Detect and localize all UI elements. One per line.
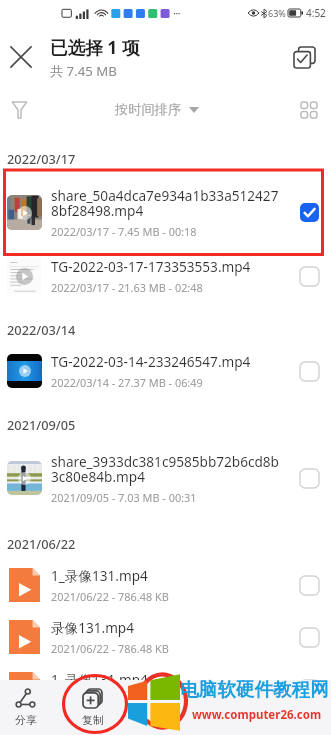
staticText: 2021/06/22 - 786.48 KB xyxy=(51,589,169,604)
button[interactable]: 录像131.mp4 xyxy=(0,611,331,663)
button[interactable]: share_3933dc381c9585bb72b6cd8b 3c80e84b.… xyxy=(0,440,331,516)
staticText: 共 7.45 MB xyxy=(50,62,117,80)
staticText: 2022/03/17 - 21.63 MB - 02:48 xyxy=(51,280,203,295)
staticText: share_50a4dca7e934a1b33a512427 8bf28498.… xyxy=(51,186,279,220)
button[interactable]: TG-2022-03-17-173353553.mp4 xyxy=(0,250,331,302)
staticText: 2022/03/17 xyxy=(7,150,76,167)
staticText: 2021/06/22 - 786.48 KB xyxy=(51,641,169,656)
button[interactable]: 复制 xyxy=(67,680,118,735)
staticText: 2021/06/22 - 786.48 KB xyxy=(51,693,169,708)
staticText: www.computer26.com xyxy=(192,707,331,723)
staticText: 2021/09/05 - 7.03 MB - 00:31 xyxy=(51,490,197,505)
button[interactable]: Select item xyxy=(295,262,323,290)
button[interactable]: Close xyxy=(1,37,41,77)
button[interactable]: 1_录像131.mp4 xyxy=(0,663,331,715)
staticText: 电脑软硬件教程网 xyxy=(180,678,330,701)
staticText: 63% xyxy=(268,7,286,19)
button[interactable]: Select item xyxy=(295,571,323,599)
button[interactable]: share_50a4dca7e934a1b33a512427 8bf28498.… xyxy=(0,174,331,250)
button[interactable]: 1_录像131.mp4 xyxy=(0,559,331,611)
staticText: 2022/03/17 - 7.45 MB - 00:18 xyxy=(51,224,197,239)
staticText: 已选择 1 项 xyxy=(50,35,140,59)
staticText: 2021/09/05 xyxy=(7,416,76,433)
staticText: 4:52 xyxy=(306,6,326,20)
staticText: TG-2022-03-17-173353553.mp4 xyxy=(51,257,251,276)
staticText: share_3933dc381c9585bb72b6cd8b 3c80e84b.… xyxy=(51,452,279,486)
staticText: 2021/06/22 xyxy=(7,535,76,552)
button[interactable]: 分享 xyxy=(0,680,51,735)
staticText: 分享 xyxy=(15,713,37,727)
button[interactable]: 按时间排序 xyxy=(109,95,205,124)
button[interactable]: Filter xyxy=(1,92,37,128)
staticText: 1_录像131.mp4 xyxy=(51,670,148,689)
button[interactable]: Select item xyxy=(295,623,323,651)
staticText: 2022/03/14 - 27.37 MB - 06:49 xyxy=(51,375,203,390)
button[interactable]: Select item xyxy=(295,675,323,703)
staticText: 1_录像131.mp4 xyxy=(51,566,148,585)
staticText: 录像131.mp4 xyxy=(51,618,135,637)
button[interactable]: Grid view xyxy=(291,92,327,128)
staticText: 按时间排序 xyxy=(115,101,181,118)
button[interactable]: TG-2022-03-14-233246547.mp4 xyxy=(0,345,331,397)
staticText: TG-2022-03-14-233246547.mp4 xyxy=(51,352,251,371)
button[interactable]: Select item xyxy=(295,464,323,492)
staticText: 复制 xyxy=(82,713,104,727)
button[interactable]: Select item xyxy=(295,198,323,226)
staticText: 2022/03/14 xyxy=(7,321,76,338)
button[interactable]: Select item xyxy=(295,357,323,385)
button[interactable]: Select all xyxy=(284,37,324,77)
